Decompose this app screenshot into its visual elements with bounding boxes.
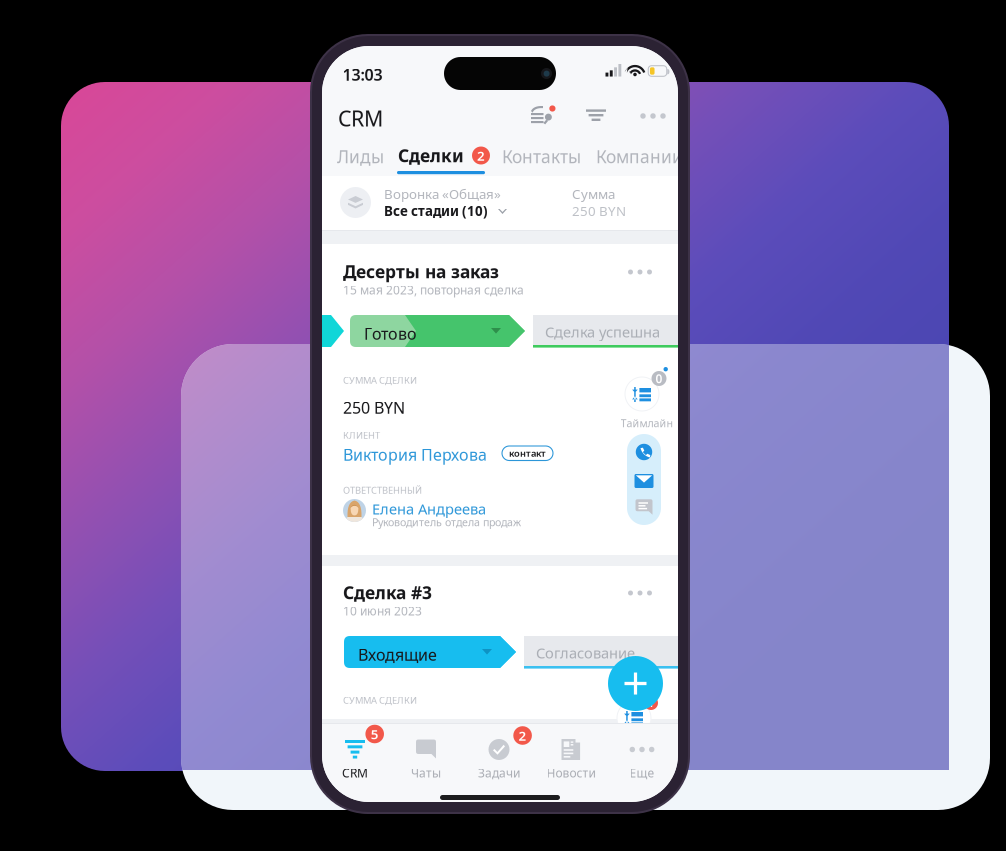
staticText: Десерты на заказ	[343, 260, 499, 283]
staticText: ОТВЕТСТВЕННЫЙ	[343, 484, 422, 496]
staticText: CRM	[338, 104, 383, 132]
staticText: Компании	[596, 145, 683, 168]
button[interactable]: Виктория Перхова	[343, 444, 487, 465]
staticText: 0	[655, 370, 662, 386]
button[interactable]: Search	[531, 104, 557, 127]
button[interactable]: Контакты	[502, 145, 581, 168]
button[interactable]: Компании	[596, 145, 683, 168]
button[interactable]: Еще	[618, 723, 666, 771]
button[interactable]: Чаты	[402, 723, 450, 771]
staticText: Сделка #3	[343, 581, 432, 604]
staticText: СУММА СДЕЛКИ	[343, 694, 417, 706]
staticText: СУММА СДЕЛКИ	[343, 374, 417, 386]
button[interactable]: контакт	[502, 446, 553, 460]
button[interactable]: More	[640, 105, 666, 127]
staticText: 15 мая 2023, повторная сделка	[343, 282, 524, 298]
staticText: Сделки	[398, 144, 464, 167]
staticText: Контакты	[502, 145, 581, 168]
staticText: 2	[477, 147, 485, 164]
button[interactable]: Новости	[547, 723, 595, 771]
button[interactable]: Chat	[627, 492, 661, 522]
button[interactable]: Filter	[586, 106, 609, 126]
staticText: 10 июня 2023	[343, 603, 422, 619]
staticText: Елена Андреева	[372, 499, 486, 518]
staticText: КЛИЕНТ	[343, 429, 380, 441]
staticText: 2	[519, 727, 527, 744]
staticText: контакт	[509, 447, 546, 459]
staticText: Сделка успешна	[545, 322, 660, 341]
button[interactable]: Лиды	[337, 145, 384, 168]
staticText: 1	[648, 696, 654, 710]
staticText: Лиды	[337, 145, 384, 168]
button[interactable]: Call	[627, 437, 661, 467]
staticText: Таймлайн	[620, 416, 673, 430]
button[interactable]: Email	[627, 466, 661, 496]
staticText: 13:03	[342, 64, 382, 85]
staticText: CRM	[342, 765, 368, 781]
staticText: Виктория Перхова	[343, 444, 487, 465]
button[interactable]: Timeline	[617, 701, 663, 747]
button[interactable]: Елена Андреева	[372, 499, 486, 518]
button[interactable]: Сделки	[398, 144, 490, 167]
button[interactable]: CRM	[331, 723, 379, 771]
button[interactable]: Timeline	[625, 377, 677, 427]
staticText: Воронка «Общая»	[384, 185, 501, 203]
staticText: Задачи	[478, 765, 520, 781]
staticText: Сумма	[572, 185, 615, 203]
staticText: Руководитель отдела продаж	[372, 515, 521, 529]
button[interactable]: Задачи	[475, 723, 523, 771]
staticText: Еще	[629, 765, 654, 781]
staticText: Готово	[364, 323, 417, 344]
staticText: Новости	[546, 765, 595, 781]
staticText: 5	[371, 725, 379, 743]
staticText: 250 BYN	[343, 397, 405, 418]
button[interactable]: Deal options	[628, 581, 652, 605]
staticText: Входящие	[358, 644, 437, 665]
staticText: Согласование	[536, 643, 635, 662]
staticText: 250 BYN	[572, 202, 626, 220]
button[interactable]: Deal options	[628, 260, 652, 284]
button[interactable]: Воронка «Общая»	[322, 176, 678, 230]
button[interactable]: Add	[608, 656, 663, 711]
staticText: Чаты	[411, 765, 441, 781]
staticText: Все стадии (10)	[384, 202, 488, 220]
